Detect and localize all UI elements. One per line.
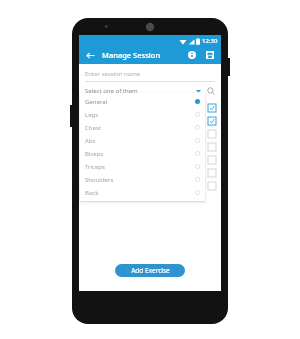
button[interactable]: Select one of them xyxy=(85,85,204,97)
staticText: Triceps xyxy=(85,156,105,164)
button[interactable]: Back xyxy=(83,48,97,62)
button[interactable]: Legs xyxy=(79,101,221,114)
staticText: Manage Session xyxy=(102,50,161,60)
staticText: Abs xyxy=(85,137,96,145)
button[interactable]: Abs xyxy=(80,134,205,147)
staticText: Add Exercise xyxy=(131,266,170,275)
staticText: Chest xyxy=(85,124,101,132)
staticText: General xyxy=(85,98,108,106)
staticText: 12:30 xyxy=(202,37,218,45)
staticText: Biceps xyxy=(85,150,104,158)
button[interactable]: Abs xyxy=(79,127,221,140)
button[interactable]: Shoulders xyxy=(79,166,221,179)
button[interactable]: Info xyxy=(185,48,199,62)
button[interactable]: Back xyxy=(80,186,205,199)
button[interactable]: General xyxy=(80,95,205,108)
button[interactable]: Triceps xyxy=(80,160,205,173)
button[interactable]: Legs xyxy=(80,108,205,121)
staticText: Back xyxy=(85,189,99,197)
button[interactable]: Triceps xyxy=(79,153,221,166)
button[interactable]: Save xyxy=(203,48,217,62)
button[interactable]: Add Exercise xyxy=(115,264,185,277)
button[interactable]: Chest xyxy=(80,121,205,134)
staticText: Triceps xyxy=(85,163,105,171)
button[interactable]: Search xyxy=(204,84,218,98)
button[interactable]: Back xyxy=(79,179,221,192)
staticText: Legs xyxy=(85,111,99,119)
staticText: Enter session name xyxy=(85,70,141,78)
staticText: Select one of them xyxy=(85,87,138,95)
button[interactable]: Biceps xyxy=(80,147,205,160)
button[interactable]: Biceps xyxy=(79,140,221,153)
staticText: Shoulders xyxy=(85,176,114,184)
staticText: Chest xyxy=(85,117,101,125)
button[interactable]: Chest xyxy=(79,114,221,127)
button[interactable]: Shoulders xyxy=(80,173,205,186)
